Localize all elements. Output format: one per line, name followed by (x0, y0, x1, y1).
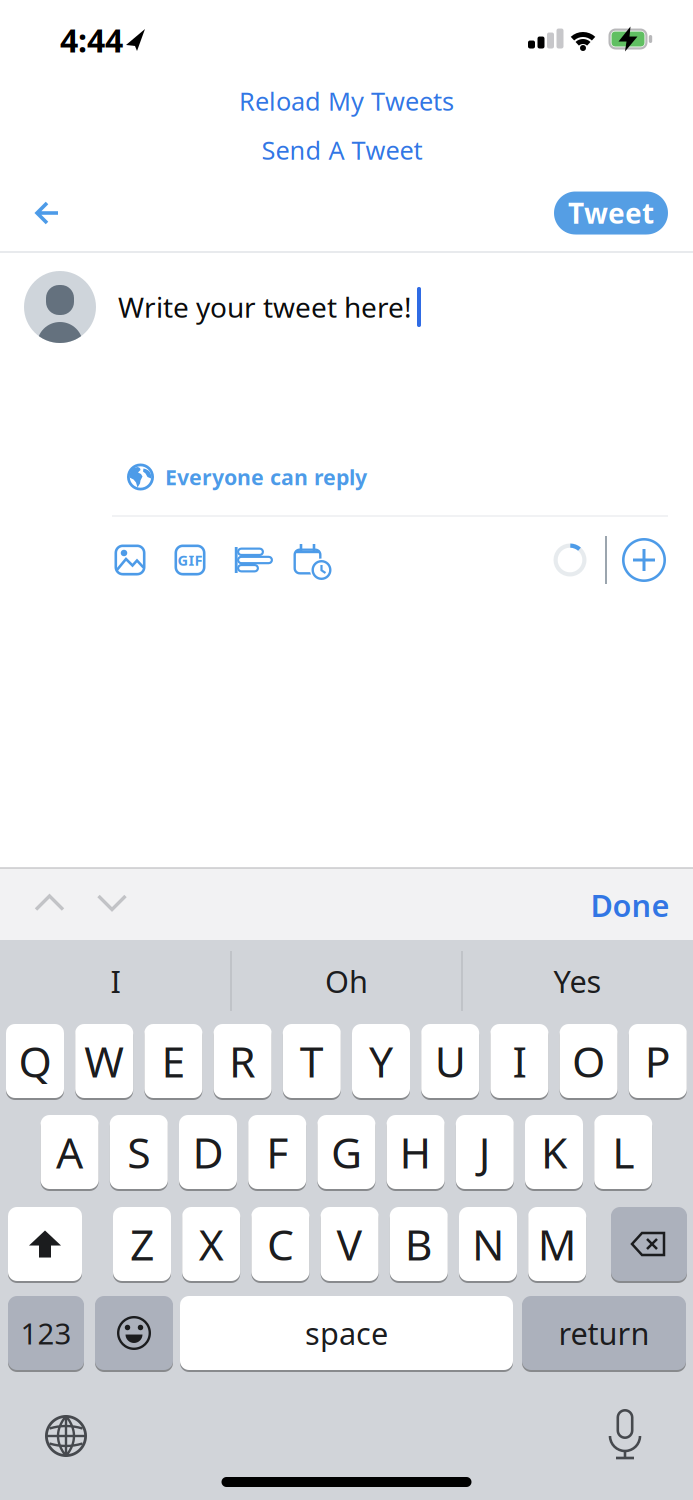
button[interactable] (622, 538, 666, 582)
staticText: D (192, 1124, 223, 1180)
button[interactable]: Yes (465, 951, 690, 1011)
staticText: P (645, 1033, 671, 1089)
staticText: C (267, 1216, 294, 1272)
button[interactable]: space (180, 1295, 513, 1371)
button[interactable]: C (251, 1206, 309, 1282)
button[interactable]: L (594, 1114, 652, 1190)
button[interactable]: K (525, 1114, 583, 1190)
button[interactable]: Z (113, 1206, 171, 1282)
button[interactable]: U (421, 1023, 479, 1099)
staticText: B (405, 1216, 433, 1272)
button[interactable]: O (560, 1023, 618, 1099)
button[interactable] (232, 543, 272, 577)
staticText: Y (369, 1033, 393, 1089)
button[interactable]: Send A Tweet (261, 133, 422, 167)
staticText: I (512, 1033, 526, 1089)
staticText: N (472, 1216, 504, 1272)
button[interactable] (611, 1207, 687, 1281)
staticText: Z (130, 1216, 154, 1272)
button[interactable]: A (41, 1114, 99, 1190)
button[interactable]: S (110, 1114, 168, 1190)
button[interactable] (293, 543, 331, 579)
staticText: I (110, 961, 120, 1001)
staticText: J (479, 1124, 491, 1180)
button[interactable] (95, 1296, 173, 1370)
button[interactable]: Reload My Tweets (239, 84, 454, 118)
staticText: Everyone can reply (165, 463, 367, 491)
staticText: Done (590, 885, 669, 925)
button[interactable]: E (144, 1023, 202, 1099)
staticText: Reload My Tweets (239, 84, 454, 118)
staticText: H (400, 1124, 432, 1180)
staticText: GIF (177, 550, 202, 570)
staticText: M (538, 1216, 577, 1272)
button[interactable]: return (522, 1295, 686, 1371)
button[interactable]: F (248, 1114, 306, 1190)
button[interactable]: Done (590, 885, 669, 925)
staticText: E (161, 1033, 185, 1089)
button[interactable]: J (456, 1114, 514, 1190)
button[interactable]: T (283, 1023, 341, 1099)
staticText: X (199, 1216, 224, 1272)
button[interactable] (97, 894, 127, 911)
button[interactable]: 123 (8, 1295, 84, 1371)
staticText: Write your tweet here! (118, 288, 412, 326)
button[interactable]: Oh (234, 951, 459, 1011)
button[interactable]: I (3, 951, 228, 1011)
staticText: R (229, 1033, 256, 1089)
button[interactable]: P (629, 1023, 687, 1099)
button[interactable]: I (490, 1023, 548, 1099)
staticText: V (337, 1216, 363, 1272)
staticText: space (305, 1313, 388, 1353)
staticText: Q (18, 1033, 51, 1089)
staticText: 4:44 (60, 19, 123, 61)
staticText: K (541, 1124, 567, 1180)
button[interactable]: G (317, 1114, 375, 1190)
button[interactable]: V (321, 1206, 379, 1282)
button[interactable]: X (182, 1206, 240, 1282)
button[interactable] (8, 1207, 82, 1281)
staticText: L (612, 1124, 634, 1180)
staticText: T (300, 1033, 324, 1089)
button[interactable]: D (179, 1114, 237, 1190)
button[interactable]: GIF (173, 543, 207, 577)
button[interactable]: H (387, 1114, 445, 1190)
button[interactable] (34, 894, 64, 911)
button[interactable]: Q (6, 1023, 64, 1099)
staticText: G (331, 1124, 362, 1180)
staticText: Tweet (568, 194, 654, 232)
staticText: Oh (325, 961, 368, 1001)
staticText: W (84, 1033, 124, 1089)
button[interactable]: R (214, 1023, 272, 1099)
staticText: A (56, 1124, 83, 1180)
button[interactable]: Y (352, 1023, 410, 1099)
button[interactable] (43, 1413, 89, 1459)
staticText: Yes (553, 961, 601, 1001)
button[interactable] (603, 1408, 647, 1460)
button[interactable]: M (528, 1206, 586, 1282)
button[interactable]: W (75, 1023, 133, 1099)
staticText: F (266, 1124, 288, 1180)
staticText: O (572, 1033, 605, 1089)
button[interactable] (113, 543, 147, 577)
button[interactable]: N (459, 1206, 517, 1282)
staticText: return (558, 1313, 649, 1353)
staticText: Send A Tweet (261, 133, 422, 167)
staticText: U (435, 1033, 466, 1089)
staticText: S (127, 1124, 150, 1180)
button[interactable]: Tweet (554, 191, 668, 234)
button[interactable] (34, 202, 60, 224)
button[interactable]: Everyone can reply (0, 463, 693, 491)
button[interactable]: B (390, 1206, 448, 1282)
staticText: 123 (20, 1313, 71, 1352)
